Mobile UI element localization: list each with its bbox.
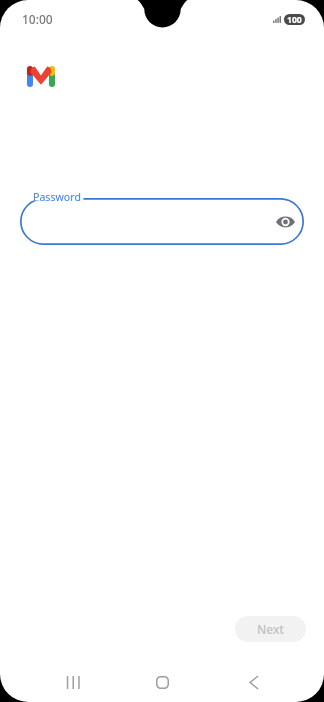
button[interactable]: Recent apps bbox=[59, 669, 85, 695]
button[interactable]: Back bbox=[241, 669, 267, 695]
staticText: Next bbox=[257, 621, 285, 637]
button[interactable]: Next bbox=[235, 616, 306, 642]
staticText: 10:00 bbox=[22, 11, 53, 27]
button[interactable]: Home bbox=[149, 669, 175, 695]
staticText: 100 bbox=[287, 14, 302, 25]
button[interactable]: Show password bbox=[20, 198, 304, 245]
staticText: Password bbox=[33, 190, 81, 204]
button[interactable]: Show password bbox=[271, 208, 299, 236]
